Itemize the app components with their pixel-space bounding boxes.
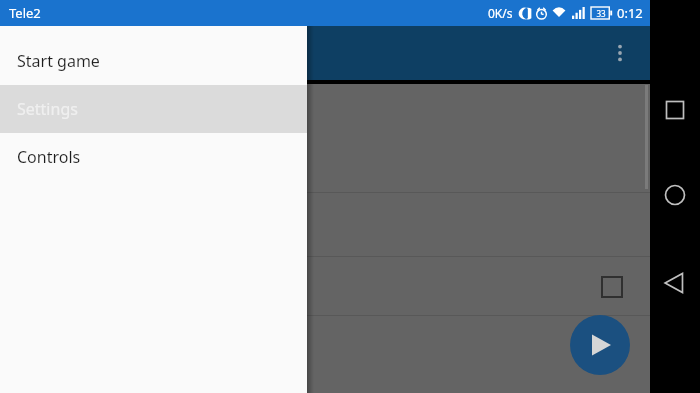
button[interactable]: Start game xyxy=(0,37,307,85)
button[interactable]: More options xyxy=(600,33,640,73)
button[interactable]: Recent apps xyxy=(650,84,700,136)
staticText: Tele2 xyxy=(9,4,41,22)
staticText: 0K/s xyxy=(488,5,513,21)
button[interactable]: Back xyxy=(650,257,700,309)
button[interactable]: Home xyxy=(650,169,700,221)
staticText: Settings xyxy=(17,98,78,120)
staticText: Start game xyxy=(17,50,100,72)
staticText: 0:12 xyxy=(617,4,643,22)
staticText: Controls xyxy=(17,146,81,168)
button[interactable]: Toggle option xyxy=(592,267,632,307)
button[interactable]: Controls xyxy=(0,133,307,181)
button[interactable]: Play xyxy=(570,315,630,375)
staticText: 33 xyxy=(596,8,606,19)
